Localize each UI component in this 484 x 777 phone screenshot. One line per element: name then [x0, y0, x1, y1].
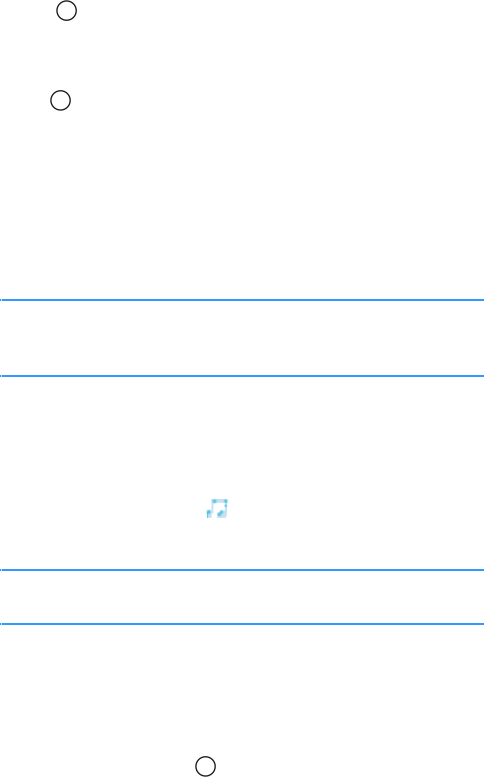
button[interactable]: Back	[57, 1, 76, 20]
button[interactable]: Account	[51, 91, 70, 110]
button[interactable]: Library	[196, 757, 215, 776]
